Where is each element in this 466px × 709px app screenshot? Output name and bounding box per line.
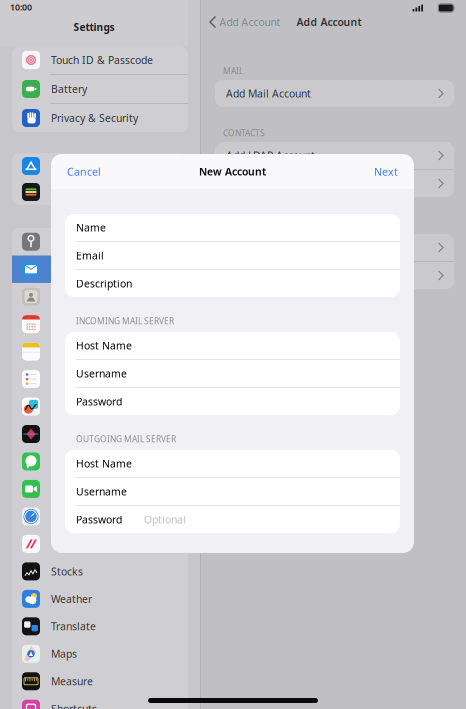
staticText: Add Account bbox=[296, 15, 361, 29]
button[interactable] bbox=[12, 153, 188, 179]
button[interactable] bbox=[12, 393, 188, 420]
staticText: Add Subscribed Calendar bbox=[226, 268, 348, 283]
button[interactable]: Next bbox=[372, 159, 400, 184]
staticText: OUTGOING MAIL SERVER bbox=[76, 433, 176, 445]
button[interactable]: Maps bbox=[12, 640, 188, 668]
staticText: Add LDAP Account bbox=[226, 148, 315, 163]
button[interactable]: Add CardDAV Account bbox=[215, 170, 454, 197]
button[interactable] bbox=[12, 365, 188, 393]
staticText: Add Account bbox=[219, 15, 280, 29]
staticText: Measure bbox=[51, 674, 93, 688]
staticText: Next bbox=[374, 164, 398, 179]
button[interactable]: Translate bbox=[12, 613, 188, 640]
button[interactable]: Weather bbox=[12, 585, 188, 613]
staticText: MAIL bbox=[223, 65, 243, 77]
staticText: Email bbox=[76, 248, 104, 263]
staticText: Username bbox=[76, 484, 127, 499]
button[interactable] bbox=[12, 448, 188, 475]
staticText: Cancel bbox=[67, 164, 101, 179]
staticText: Shortcuts bbox=[51, 702, 97, 709]
button[interactable]: Battery bbox=[12, 75, 188, 103]
staticText: Add CalDAV Account bbox=[226, 240, 325, 255]
button[interactable] bbox=[12, 283, 188, 310]
button[interactable]: Add LDAP Account bbox=[215, 142, 454, 170]
button[interactable]: Privacy & Security bbox=[12, 104, 188, 132]
button[interactable] bbox=[12, 420, 188, 448]
button[interactable] bbox=[12, 530, 188, 558]
button[interactable] bbox=[12, 503, 188, 530]
staticText: CONTACTS bbox=[223, 127, 265, 139]
button[interactable]: Touch ID & Passcode bbox=[12, 46, 188, 74]
button[interactable]: Add Subscribed Calendar bbox=[215, 262, 454, 289]
staticText: Weather bbox=[51, 592, 92, 606]
button[interactable]: Stocks bbox=[12, 558, 188, 585]
button[interactable] bbox=[12, 179, 188, 205]
staticText: Password bbox=[76, 394, 122, 409]
staticText: Maps bbox=[51, 647, 77, 661]
staticText: Translate bbox=[51, 619, 96, 633]
button[interactable] bbox=[12, 475, 188, 503]
button[interactable] bbox=[12, 310, 188, 338]
button[interactable]: Add Account bbox=[210, 10, 280, 34]
button[interactable]: Add CalDAV Account bbox=[215, 234, 454, 262]
button[interactable]: Add Mail Account bbox=[215, 80, 454, 107]
button[interactable] bbox=[12, 228, 188, 255]
staticText: Username bbox=[76, 366, 127, 381]
button[interactable] bbox=[12, 255, 188, 283]
staticText: Host Name bbox=[76, 456, 132, 471]
button[interactable]: Shortcuts bbox=[12, 695, 188, 709]
button[interactable] bbox=[12, 338, 188, 365]
staticText: Battery bbox=[51, 82, 87, 96]
staticText: Privacy & Security bbox=[51, 111, 138, 125]
staticText: Touch ID & Passcode bbox=[51, 53, 153, 67]
staticText: Description bbox=[76, 276, 132, 291]
staticText: Settings bbox=[73, 20, 114, 34]
staticText: Add Mail Account bbox=[226, 86, 311, 101]
button[interactable]: Cancel bbox=[65, 159, 103, 184]
staticText: Password bbox=[76, 512, 122, 527]
staticText: Optional bbox=[144, 512, 186, 527]
button[interactable]: Measure bbox=[12, 667, 188, 695]
staticText: New Account bbox=[199, 164, 266, 179]
staticText: INCOMING MAIL SERVER bbox=[76, 315, 174, 327]
staticText: Stocks bbox=[51, 564, 83, 578]
staticText: Host Name bbox=[76, 338, 132, 353]
staticText: 10:00 bbox=[10, 1, 32, 13]
staticText: Name bbox=[76, 220, 106, 235]
